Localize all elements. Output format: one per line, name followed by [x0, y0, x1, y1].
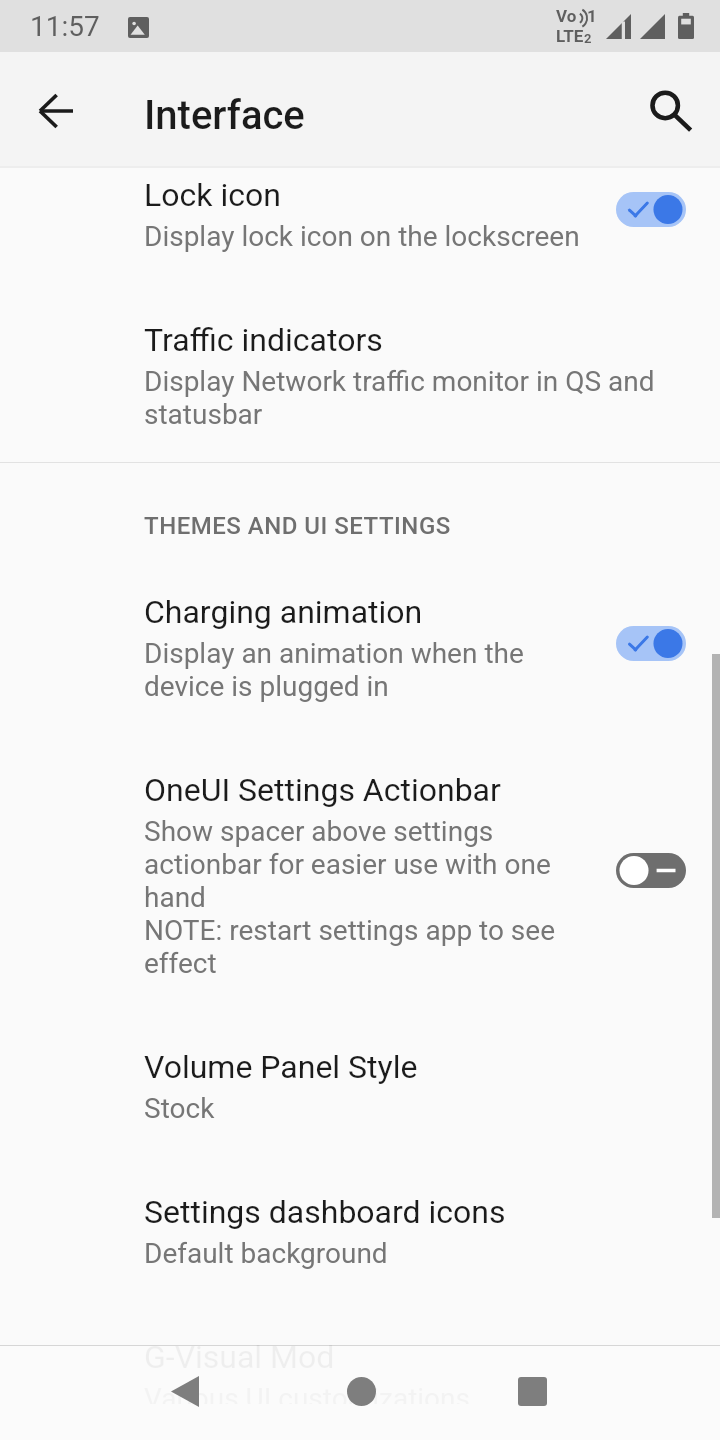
button[interactable]: Volume Panel Style — [0, 1016, 720, 1161]
staticText: THEMES AND UI SETTINGS — [144, 512, 451, 540]
staticText: LTE — [556, 26, 584, 46]
button[interactable]: Navigate up — [8, 63, 104, 159]
staticText: Various UI customizations — [144, 1382, 470, 1404]
button[interactable]: Home — [313, 1344, 409, 1439]
button[interactable]: Traffic indicators — [0, 289, 720, 461]
button[interactable]: Back — [140, 1344, 236, 1439]
button[interactable]: Switch on — [616, 192, 686, 227]
button[interactable]: Lock icon — [0, 168, 720, 289]
staticText: Display an animation when the device is … — [144, 637, 580, 703]
staticText: Settings dashboard icons — [144, 1193, 506, 1231]
button[interactable]: Settings dashboard icons — [0, 1161, 720, 1306]
button[interactable]: Switch on — [616, 626, 686, 661]
staticText: Vo — [556, 6, 577, 26]
staticText: Charging animation — [144, 593, 423, 631]
staticText: 11:57 — [30, 10, 100, 43]
staticText: Display Network traffic monitor in QS an… — [144, 365, 680, 431]
staticText: OneUI Settings Actionbar — [144, 771, 501, 809]
staticText: G-Visual Mod — [144, 1338, 335, 1376]
staticText: Show spacer above settings actionbar for… — [144, 815, 580, 980]
staticText: Default background — [144, 1237, 388, 1270]
button[interactable]: Charging animation — [0, 561, 720, 739]
staticText: Stock — [144, 1092, 215, 1125]
button[interactable]: G-Visual Mod — [0, 1306, 720, 1440]
staticText: Interface — [144, 92, 305, 139]
staticText: Lock icon — [144, 176, 281, 214]
staticText: 2 — [584, 31, 592, 46]
button[interactable]: Search — [622, 63, 718, 159]
staticText: Traffic indicators — [144, 321, 383, 359]
button[interactable]: OneUI Settings Actionbar — [0, 739, 720, 1016]
staticText: Display lock icon on the lockscreen — [144, 220, 580, 253]
button[interactable]: Switch off — [616, 853, 686, 888]
staticText: Volume Panel Style — [144, 1048, 418, 1086]
staticText: 1 — [587, 6, 597, 26]
button[interactable]: Recent apps — [484, 1344, 580, 1439]
